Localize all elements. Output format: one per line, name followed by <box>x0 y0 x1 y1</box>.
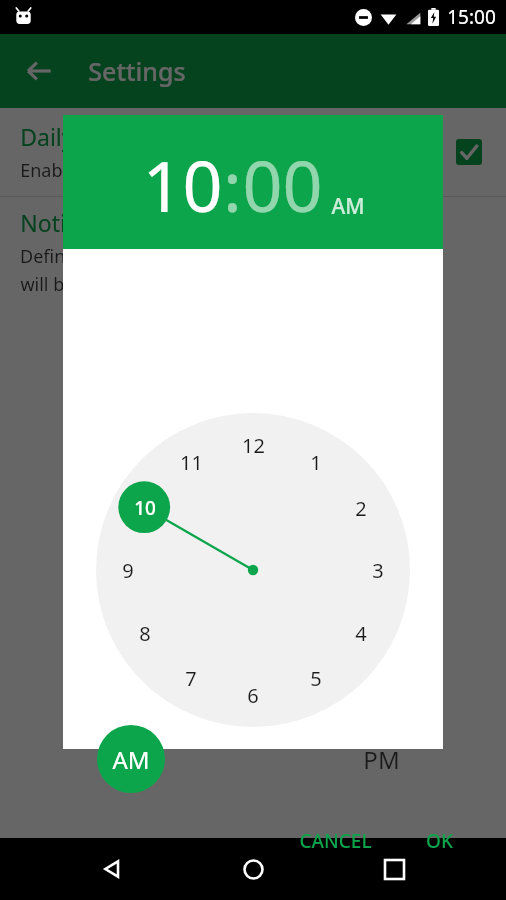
staticText: 9 <box>122 557 134 584</box>
button[interactable]: 9 <box>109 555 147 585</box>
staticText: 1 <box>310 449 322 476</box>
button[interactable]: 11 <box>172 447 210 477</box>
button[interactable]: Recent apps <box>366 841 422 897</box>
button[interactable]: 8 <box>126 618 164 648</box>
button[interactable]: 7 <box>172 663 210 693</box>
staticText: : <box>223 137 242 232</box>
staticText: Daily reminder <box>20 121 180 152</box>
button[interactable]: 12 <box>234 430 272 460</box>
button[interactable]: CANCEL <box>281 819 389 863</box>
button[interactable]: 6 <box>234 680 272 710</box>
staticText: Notification time <box>20 207 201 238</box>
staticText: 7 <box>185 665 197 692</box>
button[interactable]: Back <box>85 841 141 897</box>
button[interactable]: 4 <box>342 618 380 648</box>
staticText: 8 <box>139 620 151 647</box>
button[interactable]: Home <box>225 841 281 897</box>
button[interactable]: 3 <box>359 555 397 585</box>
button[interactable]: 5 <box>297 663 335 693</box>
staticText: 5 <box>310 665 322 692</box>
staticText: 4 <box>355 620 367 647</box>
staticText: 3 <box>372 557 384 584</box>
button[interactable]: PM <box>343 725 419 793</box>
staticText: CANCEL <box>299 828 372 854</box>
staticText: PM <box>363 743 400 776</box>
button[interactable]: Daily reminder <box>0 108 506 196</box>
staticText: 2 <box>355 495 367 522</box>
staticText: 10 <box>134 495 156 521</box>
other: Back <box>26 58 52 84</box>
staticText: OK <box>426 828 453 854</box>
staticText: 6 <box>247 682 259 709</box>
button[interactable]: 00 <box>242 137 323 232</box>
staticText: AM <box>331 192 365 221</box>
staticText: Enable daily reminder <box>20 158 205 183</box>
button[interactable]: 10 <box>126 493 164 523</box>
button[interactable]: 1 <box>297 447 335 477</box>
staticText: 15:00 <box>447 4 496 30</box>
staticText: 12 <box>242 432 265 459</box>
staticText: will be shown <box>20 272 135 297</box>
button[interactable]: 10 <box>142 137 223 232</box>
staticText: Settings <box>88 54 186 88</box>
staticText: AM <box>112 743 150 776</box>
button[interactable]: OK <box>407 819 471 863</box>
button[interactable]: Notification time <box>0 197 506 307</box>
staticText: 11 <box>180 449 203 476</box>
staticText: Define the time at which notification <box>20 244 327 269</box>
button[interactable]: 2 <box>342 493 380 523</box>
button[interactable]: AM <box>97 725 165 793</box>
